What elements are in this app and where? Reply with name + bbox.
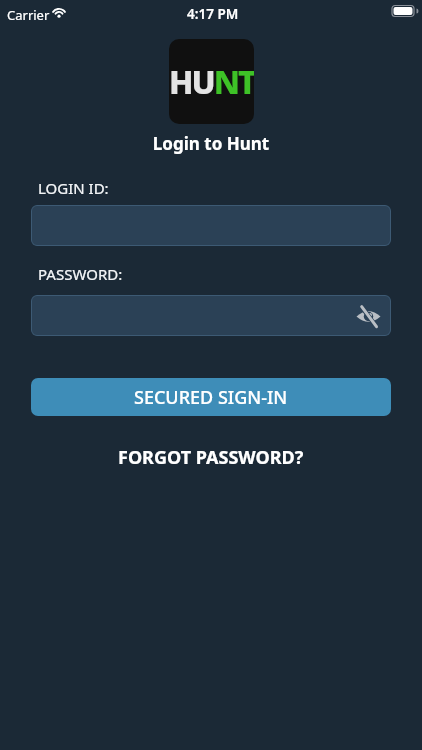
button[interactable]: SECURED SIGN-IN xyxy=(31,378,391,416)
staticText: PASSWORD: xyxy=(38,264,123,284)
staticText: SECURED SIGN-IN xyxy=(134,385,288,410)
button[interactable] xyxy=(354,302,382,330)
button[interactable] xyxy=(31,295,391,336)
staticText: Login to Hunt xyxy=(0,132,422,155)
button[interactable] xyxy=(31,205,391,246)
staticText: Carrier xyxy=(7,6,50,24)
staticText: FORGOT PASSWORD? xyxy=(118,445,304,470)
staticText: LOGIN ID: xyxy=(38,178,109,198)
staticText: HUNT xyxy=(169,60,254,104)
button[interactable]: FORGOT PASSWORD? xyxy=(118,445,304,470)
staticText: 4:17 PM xyxy=(187,5,239,23)
